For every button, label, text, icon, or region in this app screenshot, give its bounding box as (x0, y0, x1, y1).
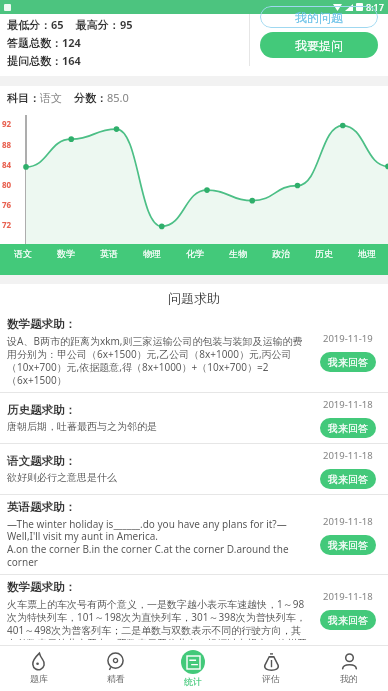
staticText: 2019-11-18 (323, 398, 373, 411)
staticText: 问题求助 (168, 290, 220, 306)
staticText: 答题总数： (7, 36, 62, 50)
staticText: 政治 (272, 248, 290, 259)
staticText: 2019-11-18 (323, 515, 373, 528)
staticText: 92 (2, 118, 12, 129)
button[interactable]: 数学题求助： (0, 575, 388, 645)
staticText: 124 (62, 35, 81, 50)
staticText: 65 (51, 17, 64, 32)
staticText: 统计 (184, 676, 202, 687)
staticText: 我来回答 (328, 539, 368, 552)
staticText: 我来回答 (328, 356, 368, 369)
staticText: 数学题求助： (7, 317, 76, 331)
staticText: 精看 (107, 673, 125, 684)
button[interactable]: 评估 (232, 645, 310, 691)
button[interactable]: 我来回答 (320, 469, 376, 489)
staticText: 语文 (40, 91, 62, 105)
staticText: 评估 (262, 673, 280, 684)
staticText: 科目： (7, 91, 40, 105)
staticText: 我来回答 (328, 473, 368, 486)
staticText: 提问总数： (7, 54, 62, 68)
staticText: 化学 (186, 248, 204, 259)
button[interactable]: 我来回答 (320, 535, 376, 555)
staticText: 我要提问 (295, 38, 343, 53)
staticText: 语文题求助： (7, 454, 76, 468)
staticText: 物理 (143, 248, 161, 259)
staticText: 我的问题 (295, 10, 343, 25)
staticText: —The winter holiday is______.do you have… (7, 517, 309, 569)
staticText: 唐朝后期，吐蕃最西与之为邻的是 (7, 420, 157, 433)
staticText: 题库 (30, 673, 48, 684)
staticText: 2019-11-18 (323, 590, 373, 603)
staticText: 我来回答 (328, 422, 368, 435)
staticText: 76 (2, 199, 12, 210)
staticText: 数学题求助： (7, 580, 76, 594)
staticText: 72 (2, 219, 12, 230)
staticText: 最低分： (7, 18, 51, 32)
staticText: 历史题求助： (7, 403, 76, 417)
staticText: 95 (120, 17, 133, 32)
button[interactable]: 我要提问 (260, 32, 378, 58)
staticText: 最高分： (64, 17, 120, 32)
staticText: 数学 (57, 248, 75, 259)
button[interactable]: 我来回答 (320, 352, 376, 372)
staticText: 8:17 (366, 1, 384, 13)
staticText: 英语 (100, 248, 118, 259)
staticText: 我的 (340, 673, 358, 684)
button[interactable]: 我来回答 (320, 418, 376, 438)
staticText: 85.0 (107, 90, 129, 105)
button[interactable]: 统计 (154, 645, 232, 691)
staticText: 我来回答 (328, 614, 368, 627)
button[interactable]: 我的 (310, 645, 388, 691)
staticText: 生物 (229, 248, 247, 259)
staticText: 语文 (14, 248, 32, 259)
staticText: 欲好则必行之意思是什么 (7, 471, 117, 484)
staticText: 164 (62, 53, 81, 68)
button[interactable]: 语文题求助： (0, 444, 388, 494)
staticText: 88 (2, 139, 12, 150)
staticText: 地理 (358, 248, 376, 259)
staticText: 分数： (74, 91, 107, 105)
staticText: 英语题求助： (7, 500, 76, 514)
button[interactable]: 历史题求助： (0, 393, 388, 443)
staticText: 2019-11-18 (323, 449, 373, 462)
button[interactable]: 我的问题 (260, 6, 378, 28)
button[interactable]: 我来回答 (320, 610, 376, 630)
staticText: 历史 (315, 248, 333, 259)
staticText: 84 (2, 159, 12, 170)
staticText: 设A、B两市的距离为xkm,则三家运输公司的包装与装卸及运输的费用分别为：甲公司… (7, 334, 309, 387)
staticText: 2019-11-19 (323, 332, 373, 345)
button[interactable]: 英语题求助： (0, 495, 388, 574)
staticText: 火车票上的车次号有两个意义，一是数字越小表示车速越快，1～98次为特快列车，10… (7, 597, 309, 640)
button[interactable]: 数学题求助： (0, 312, 388, 392)
button[interactable]: 题库 (0, 645, 77, 691)
button[interactable]: 精看 (77, 645, 154, 691)
staticText: 80 (2, 179, 12, 190)
